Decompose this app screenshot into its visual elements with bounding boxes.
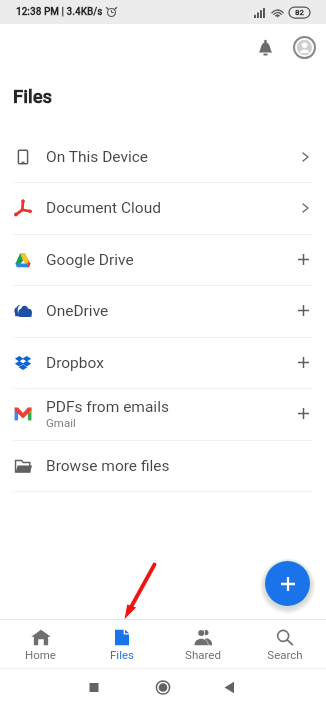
staticText: Google Drive bbox=[46, 251, 134, 269]
button[interactable]: Shared bbox=[162, 620, 244, 668]
button[interactable]: Search bbox=[244, 620, 326, 668]
button[interactable]: Browse more files bbox=[0, 440, 326, 491]
staticText: Home bbox=[25, 648, 56, 661]
staticText: Files bbox=[13, 86, 53, 108]
button[interactable]: Document Cloud bbox=[0, 182, 326, 233]
staticText: Shared bbox=[185, 648, 221, 661]
button[interactable]: Notifications bbox=[249, 31, 281, 63]
button[interactable]: Home bbox=[0, 620, 81, 668]
staticText: Dropbox bbox=[46, 354, 104, 372]
staticText: 12:38 PM | 3.4KB/s bbox=[16, 6, 103, 18]
button[interactable]: Dropbox bbox=[0, 337, 326, 388]
staticText: 82 bbox=[295, 8, 305, 17]
staticText: Search bbox=[267, 648, 303, 661]
staticText: PDFs from emails bbox=[46, 398, 169, 416]
button[interactable]: Create new file bbox=[265, 561, 310, 606]
staticText: Files bbox=[110, 648, 134, 661]
button[interactable]: Account bbox=[288, 31, 320, 63]
staticText: Gmail bbox=[46, 416, 76, 429]
staticText: OneDrive bbox=[46, 302, 109, 320]
button[interactable]: Files bbox=[81, 620, 162, 668]
staticText: Document Cloud bbox=[46, 199, 161, 217]
button[interactable]: Google Drive bbox=[0, 234, 326, 285]
button[interactable]: PDFs from emails bbox=[0, 388, 326, 439]
button[interactable]: OneDrive bbox=[0, 285, 326, 336]
staticText: Browse more files bbox=[46, 457, 170, 475]
button[interactable]: On This Device bbox=[0, 131, 326, 182]
staticText: On This Device bbox=[46, 148, 149, 166]
